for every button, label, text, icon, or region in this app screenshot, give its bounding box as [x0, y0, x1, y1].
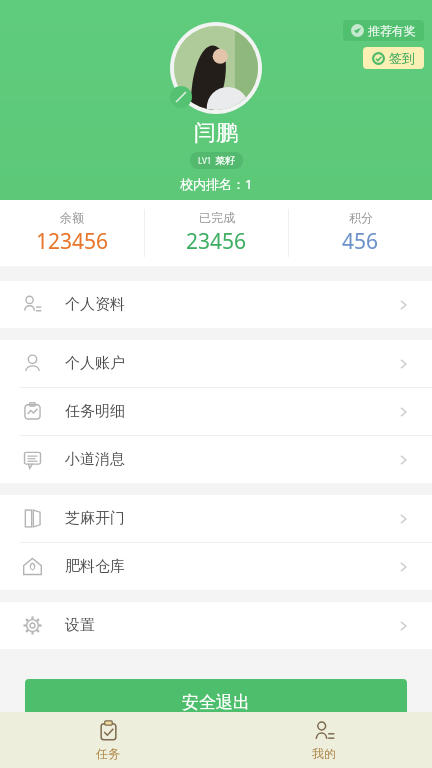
- staticText: 个人账户: [65, 354, 125, 373]
- staticText: 闫鹏: [194, 119, 238, 147]
- staticText: 设置: [65, 616, 95, 635]
- staticText: 余额: [60, 210, 84, 225]
- button[interactable]: 余额: [0, 200, 144, 266]
- button[interactable]: 任务明细: [0, 388, 432, 435]
- staticText: LV1: [198, 155, 212, 166]
- button[interactable]: Edit avatar: [170, 86, 192, 108]
- button[interactable]: 肥料仓库: [0, 543, 432, 590]
- staticText: 23456: [186, 227, 247, 256]
- button[interactable]: 安全退出: [25, 679, 407, 725]
- button[interactable]: 芝麻开门: [0, 495, 432, 542]
- staticText: 个人资料: [65, 295, 125, 314]
- button[interactable]: 我的: [216, 712, 432, 768]
- staticText: 校内排名：1: [180, 175, 253, 193]
- staticText: 已完成: [199, 210, 235, 225]
- staticText: 任务: [96, 746, 120, 761]
- staticText: 积分: [349, 210, 373, 225]
- button[interactable]: 个人账户: [0, 340, 432, 387]
- staticText: 芝麻开门: [65, 509, 125, 528]
- staticText: 推荐有奖: [368, 23, 416, 38]
- staticText: 安全退出: [182, 692, 250, 713]
- staticText: 任务明细: [65, 402, 125, 421]
- staticText: 我的: [312, 746, 336, 761]
- button[interactable]: 设置: [0, 602, 432, 649]
- staticText: 小道消息: [65, 450, 125, 469]
- button[interactable]: 已完成: [145, 200, 288, 266]
- staticText: 肥料仓库: [65, 557, 125, 576]
- staticText: 菜籽: [215, 154, 235, 167]
- button[interactable]: 积分: [289, 200, 432, 266]
- button[interactable]: 推荐有奖: [343, 20, 424, 41]
- button[interactable]: 签到: [363, 47, 424, 69]
- staticText: 123456: [36, 227, 109, 256]
- staticText: 456: [342, 227, 379, 256]
- staticText: 签到: [389, 50, 415, 66]
- button[interactable]: 小道消息: [0, 436, 432, 483]
- button[interactable]: 任务: [0, 712, 216, 768]
- button[interactable]: 个人资料: [0, 281, 432, 328]
